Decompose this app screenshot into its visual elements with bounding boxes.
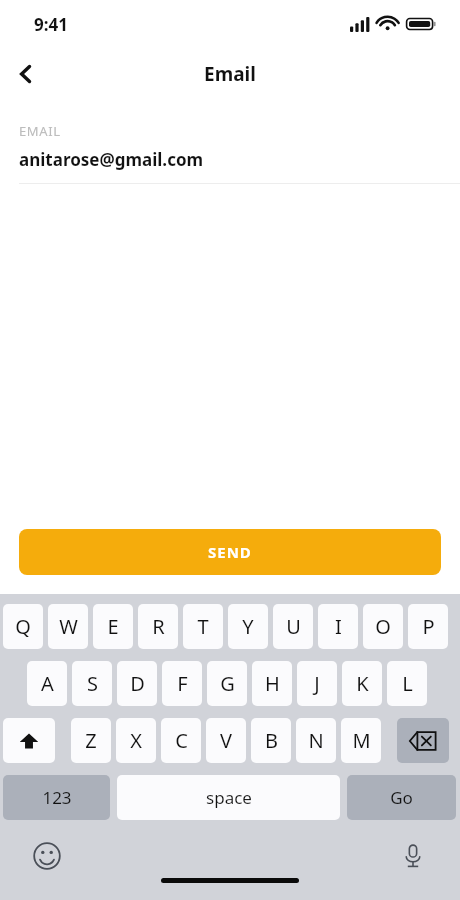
button[interactable]: D	[117, 661, 157, 706]
staticText: SEND	[208, 542, 252, 562]
staticText: B	[265, 727, 278, 754]
staticText: U	[286, 613, 301, 640]
button[interactable]: G	[207, 661, 247, 706]
staticText: N	[308, 727, 324, 754]
staticText: P	[422, 613, 435, 640]
button[interactable]: Voice input	[396, 839, 430, 873]
button[interactable]: Go	[347, 775, 456, 820]
button[interactable]: V	[206, 718, 246, 763]
button[interactable]: SEND	[19, 529, 441, 575]
button[interactable]: O	[363, 604, 403, 649]
button[interactable]: B	[251, 718, 291, 763]
button[interactable]: C	[161, 718, 201, 763]
staticText: F	[177, 670, 188, 697]
button[interactable]: Shift	[3, 718, 55, 763]
staticText: X	[130, 727, 142, 754]
staticText: M	[352, 727, 371, 754]
staticText: A	[41, 670, 54, 697]
button[interactable]: F	[162, 661, 202, 706]
button[interactable]: M	[341, 718, 381, 763]
staticText: K	[356, 670, 369, 697]
button[interactable]: X	[116, 718, 156, 763]
staticText: Y	[242, 613, 254, 640]
button[interactable]: Delete	[397, 718, 449, 763]
staticText: T	[197, 613, 209, 640]
button[interactable]: T	[183, 604, 223, 649]
staticText: Z	[85, 727, 97, 754]
staticText: Go	[390, 786, 413, 809]
button[interactable]: Emoji	[30, 839, 64, 873]
button[interactable]: H	[252, 661, 292, 706]
button[interactable]: space	[117, 775, 340, 820]
button[interactable]: U	[273, 604, 313, 649]
button[interactable]: Q	[3, 604, 43, 649]
staticText: C	[175, 727, 188, 754]
staticText: Q	[15, 613, 31, 640]
staticText: space	[206, 786, 252, 809]
staticText: V	[220, 727, 232, 754]
button[interactable]: A	[27, 661, 67, 706]
staticText: 9:41	[34, 13, 68, 36]
button[interactable]: L	[387, 661, 427, 706]
staticText: EMAIL	[19, 122, 61, 140]
button[interactable]: 123	[3, 775, 110, 820]
staticText: L	[402, 670, 413, 697]
staticText: I	[335, 613, 342, 640]
button[interactable]: J	[297, 661, 337, 706]
staticText: O	[375, 613, 391, 640]
button[interactable]: W	[48, 604, 88, 649]
button[interactable]: P	[408, 604, 448, 649]
button[interactable]: N	[296, 718, 336, 763]
staticText: W	[59, 613, 78, 640]
staticText: anitarose@gmail.com	[19, 148, 204, 171]
button[interactable]: I	[318, 604, 358, 649]
button[interactable]: Y	[228, 604, 268, 649]
button[interactable]: E	[93, 604, 133, 649]
button[interactable]: R	[138, 604, 178, 649]
staticText: G	[220, 670, 235, 697]
button[interactable]: Back	[0, 48, 52, 100]
button[interactable]: Z	[71, 718, 111, 763]
button[interactable]: S	[72, 661, 112, 706]
staticText: H	[265, 670, 280, 697]
staticText: Email	[204, 61, 256, 87]
staticText: 123	[42, 786, 72, 809]
staticText: S	[87, 670, 98, 697]
staticText: D	[130, 670, 145, 697]
button[interactable]: K	[342, 661, 382, 706]
staticText: J	[314, 670, 320, 697]
staticText: R	[152, 613, 165, 640]
staticText: E	[107, 613, 119, 640]
